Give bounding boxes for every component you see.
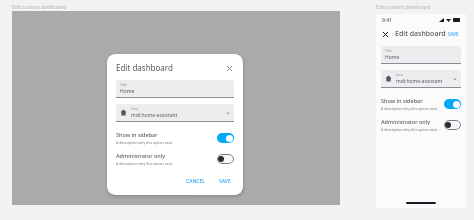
- staticText: Home: [385, 54, 400, 61]
- staticText: CANCEL: [186, 178, 205, 185]
- button[interactable]: On: [444, 99, 461, 109]
- button[interactable]: Title: [116, 80, 234, 98]
- staticText: Home: [120, 88, 135, 95]
- staticText: Edit dashboard: [116, 62, 224, 73]
- button[interactable]: Show in sidebar: [381, 97, 461, 111]
- button[interactable]: Icon: [381, 70, 461, 88]
- staticText: Administrator only: [116, 152, 166, 159]
- staticText: Edit custom dashboard: [376, 4, 431, 11]
- button[interactable]: Title: [381, 46, 461, 64]
- button[interactable]: Close: [381, 30, 390, 39]
- staticText: A description why this option exist: [116, 161, 173, 166]
- staticText: Icon: [396, 72, 404, 77]
- staticText: SAVE: [448, 31, 459, 37]
- staticText: mdi:home-assistant: [131, 112, 178, 119]
- button[interactable]: SAVE: [216, 176, 234, 187]
- staticText: Show in sidebar: [381, 97, 423, 104]
- button[interactable]: On: [217, 133, 234, 143]
- staticText: A description why this option exist: [116, 140, 173, 145]
- button[interactable]: Show in sidebar: [116, 131, 234, 145]
- staticText: 9:41: [382, 17, 392, 24]
- staticText: Edit custom dashboard: [12, 4, 67, 11]
- staticText: A description why this option exist: [381, 106, 438, 111]
- button[interactable]: Close: [224, 63, 234, 73]
- staticText: Icon: [131, 106, 139, 111]
- staticText: A description why this option exist: [381, 127, 438, 132]
- staticText: Administrator only: [381, 118, 431, 125]
- button[interactable]: Off: [217, 154, 234, 164]
- button[interactable]: CANCEL: [183, 176, 208, 187]
- staticText: Show in sidebar: [116, 131, 158, 138]
- staticText: SAVE: [219, 178, 231, 185]
- button[interactable]: SAVE: [446, 30, 461, 38]
- button[interactable]: Administrator only: [116, 152, 234, 166]
- staticText: mdi:home-assistant: [396, 78, 443, 85]
- button[interactable]: Icon: [116, 104, 234, 122]
- staticText: Title: [120, 82, 127, 87]
- button[interactable]: Off: [444, 120, 461, 130]
- staticText: Edit dashboard: [395, 29, 446, 39]
- staticText: Title: [385, 48, 392, 53]
- button[interactable]: Administrator only: [381, 118, 461, 132]
